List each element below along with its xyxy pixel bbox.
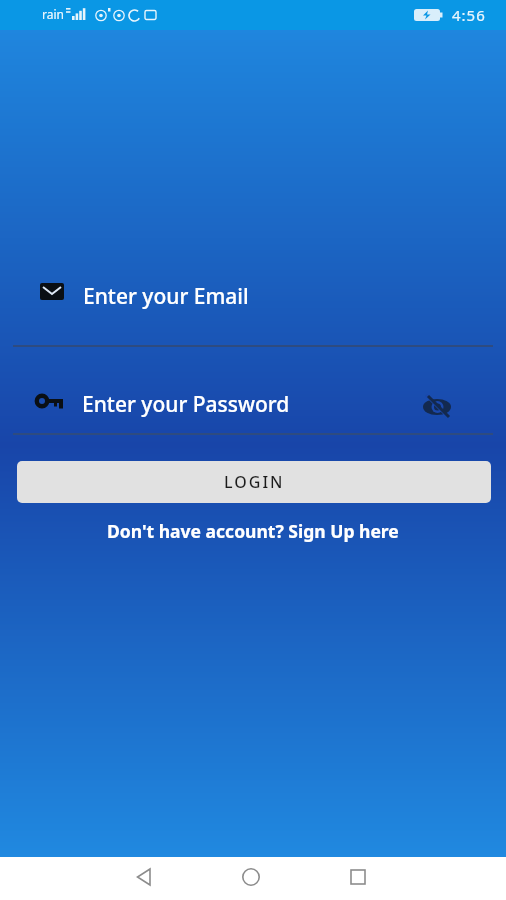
staticText: 4:56: [452, 5, 486, 25]
button[interactable]: Enter your Email: [83, 282, 249, 311]
staticText: rain: [42, 6, 64, 22]
staticText: LOGIN: [224, 471, 285, 493]
button[interactable]: [423, 396, 452, 418]
button[interactable]: Don't have account? Sign Up here: [107, 519, 399, 543]
button[interactable]: [242, 868, 260, 886]
button[interactable]: LOGIN: [17, 461, 491, 503]
button[interactable]: Enter your Password: [82, 390, 290, 419]
button[interactable]: [136, 868, 152, 886]
button[interactable]: [350, 869, 366, 885]
